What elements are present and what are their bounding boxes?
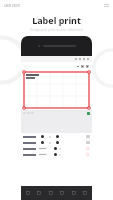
staticText: Design and print custom labels fast <box>14 28 99 32</box>
button[interactable]: Tool <box>78 58 82 60</box>
button[interactable]: Nav 3 <box>59 190 65 196</box>
button[interactable] <box>23 134 90 139</box>
button[interactable]: Tool <box>82 58 86 60</box>
button[interactable]: Nav 0 <box>25 190 31 196</box>
button[interactable]: Label print breadcrumb <box>3 3 21 9</box>
button[interactable]: Nav 1 <box>36 190 42 196</box>
button[interactable]: Nav 2 <box>48 190 54 196</box>
button[interactable]: Action <box>85 65 90 68</box>
button[interactable] <box>23 152 90 157</box>
button[interactable]: Action <box>80 65 85 68</box>
button[interactable]: Menu <box>103 3 110 8</box>
button[interactable] <box>23 140 90 145</box>
button[interactable] <box>23 146 90 151</box>
staticText: LABEL PRINT <box>4 4 20 8</box>
button[interactable]: Print <box>87 112 90 115</box>
button[interactable]: Nav 4 <box>71 190 77 196</box>
button[interactable]: Tool <box>74 58 78 60</box>
button[interactable]: Nav 5 <box>82 190 88 196</box>
button[interactable]: Tool <box>86 58 90 60</box>
button[interactable]: Back <box>23 64 28 69</box>
staticText: Label print <box>0 14 113 26</box>
button[interactable] <box>24 72 89 108</box>
button[interactable]: More <box>76 66 80 67</box>
